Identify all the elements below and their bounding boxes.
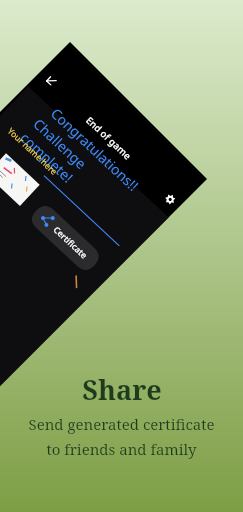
staticText: Send generated certificate (28, 414, 215, 434)
staticText: Share (82, 371, 162, 408)
staticText: to friends and family (46, 439, 197, 459)
